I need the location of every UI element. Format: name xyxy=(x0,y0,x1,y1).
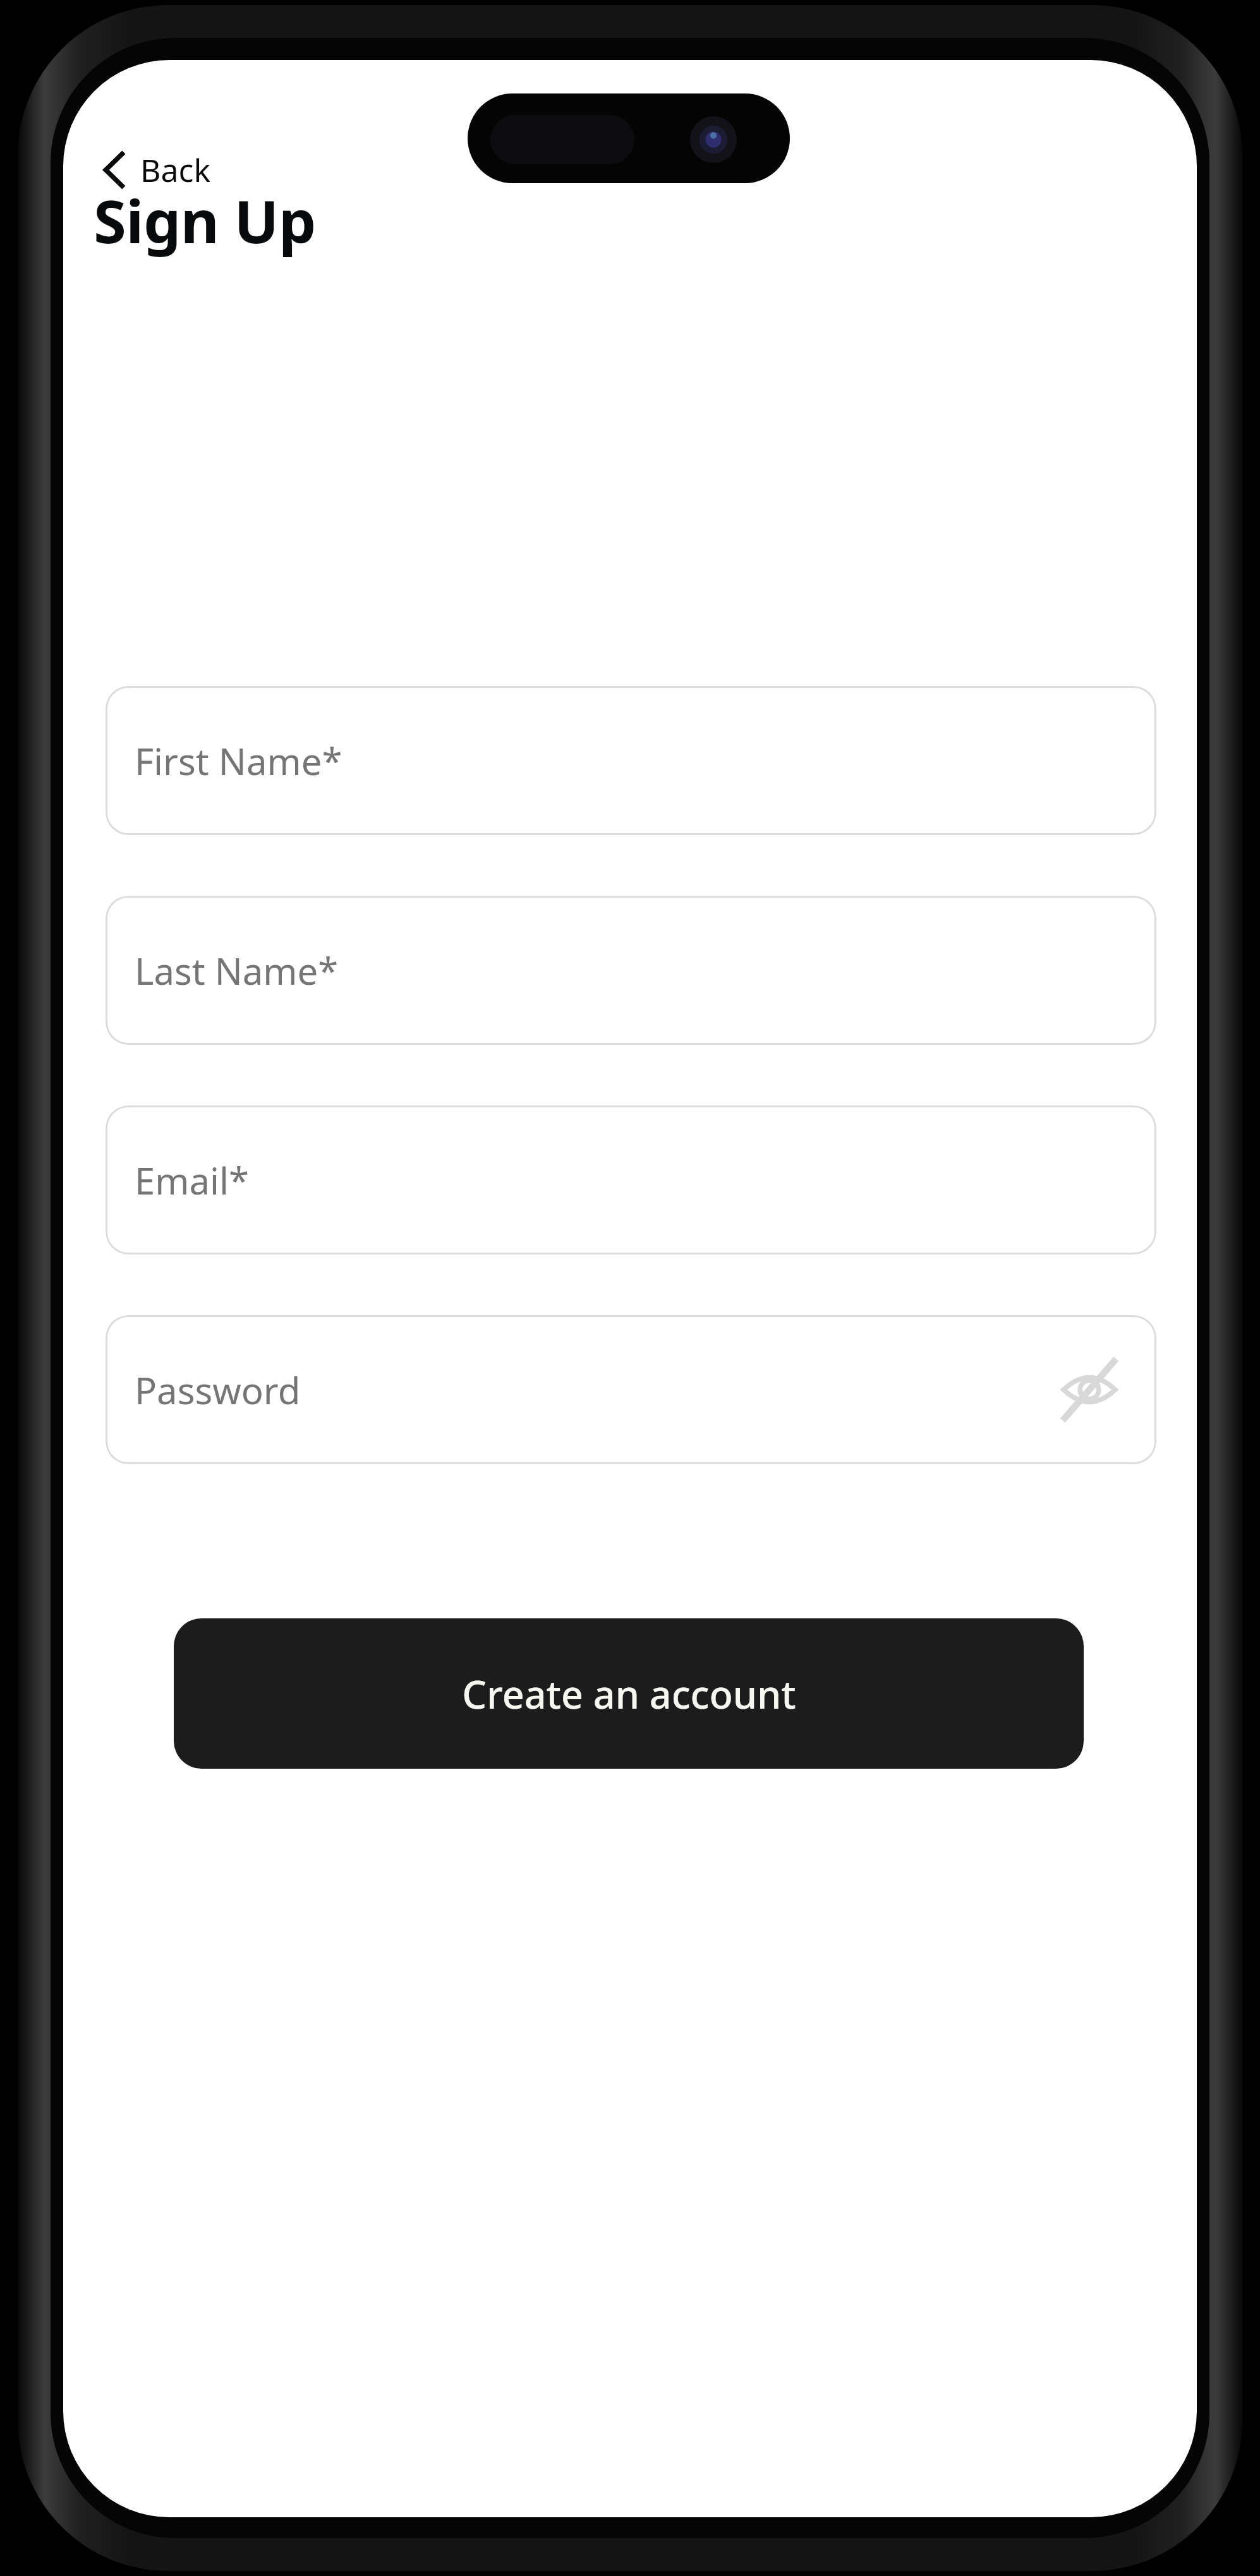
button[interactable]: First Name* xyxy=(106,686,1156,835)
button[interactable]: Last Name* xyxy=(106,896,1156,1045)
staticText: Email* xyxy=(135,1155,249,1205)
button[interactable]: Back xyxy=(100,140,269,200)
staticText: Back xyxy=(140,148,211,191)
staticText: Password xyxy=(135,1365,301,1415)
staticText: First Name* xyxy=(135,736,342,786)
button[interactable]: Password xyxy=(106,1315,1156,1464)
staticText: Sign Up xyxy=(94,180,316,261)
button[interactable]: Email* xyxy=(106,1105,1156,1255)
button[interactable]: Show password xyxy=(1057,1357,1122,1423)
staticText: Last Name* xyxy=(135,946,339,996)
staticText: Create an account xyxy=(462,1668,796,1720)
button[interactable]: Create an account xyxy=(174,1618,1084,1769)
